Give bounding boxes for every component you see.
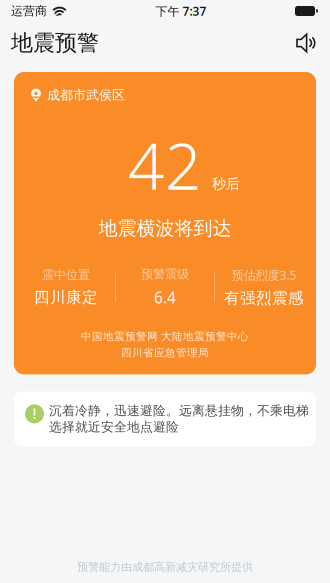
staticText: 预警能力由成都高新减灾研究所提供 <box>77 560 253 574</box>
staticText: 中国地震预警网 大陆地震预警中心 <box>81 330 249 343</box>
staticText: 四川康定 <box>34 288 98 307</box>
staticText: 沉着冷静，迅速避险。远离悬挂物，不乘电梯选择就近安全地点避险 <box>49 402 309 435</box>
staticText: 有强烈震感 <box>224 288 304 308</box>
staticText: 地震预警 <box>11 29 99 57</box>
staticText: 预警震级 <box>141 266 189 282</box>
staticText: 下午 7:37 <box>155 3 206 19</box>
staticText: 42 <box>128 121 202 209</box>
staticText: 运营商 <box>11 3 47 18</box>
staticText: 震中位置 <box>42 267 90 283</box>
staticText: 成都市武侯区 <box>47 87 125 103</box>
button[interactable]: 提示音 <box>292 27 319 59</box>
staticText: 地震横波将到达 <box>98 216 231 240</box>
staticText: 秒后 <box>212 175 240 193</box>
staticText: 四川省应急管理局 <box>121 346 209 359</box>
staticText: 预估烈度3.5 <box>231 267 296 283</box>
staticText: 6.4 <box>154 287 176 308</box>
